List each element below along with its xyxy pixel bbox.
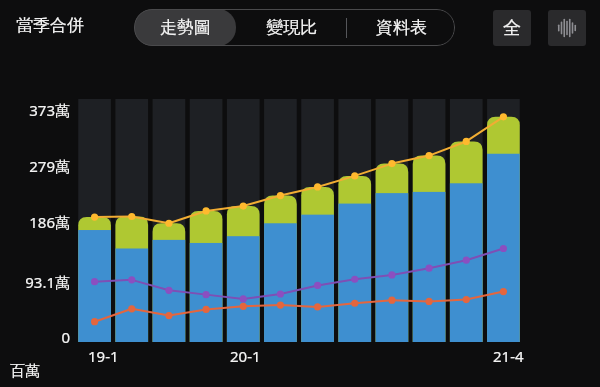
staticText: 當季合併 xyxy=(16,15,84,36)
staticText: 93.1萬 xyxy=(25,272,70,292)
staticText: 百萬 xyxy=(10,362,40,381)
staticText: 20-1 xyxy=(230,346,261,366)
button[interactable]: 全 xyxy=(493,10,531,46)
button[interactable]: 當季合併 xyxy=(14,13,86,38)
staticText: 0 xyxy=(61,327,70,347)
staticText: 279萬 xyxy=(29,156,70,176)
staticText: 373萬 xyxy=(29,100,70,120)
staticText: 21-4 xyxy=(493,346,524,366)
button[interactable]: 走勢圖 xyxy=(134,9,236,46)
staticText: 186萬 xyxy=(29,212,70,232)
staticText: 全 xyxy=(503,17,521,40)
staticText: 變現比 xyxy=(266,17,317,38)
button[interactable]: Indicators xyxy=(548,10,586,46)
button[interactable]: 資料表 xyxy=(347,9,455,46)
staticText: 19-1 xyxy=(88,346,119,366)
staticText: 走勢圖 xyxy=(160,17,211,38)
button[interactable]: 變現比 xyxy=(236,9,346,46)
staticText: 資料表 xyxy=(376,17,427,38)
